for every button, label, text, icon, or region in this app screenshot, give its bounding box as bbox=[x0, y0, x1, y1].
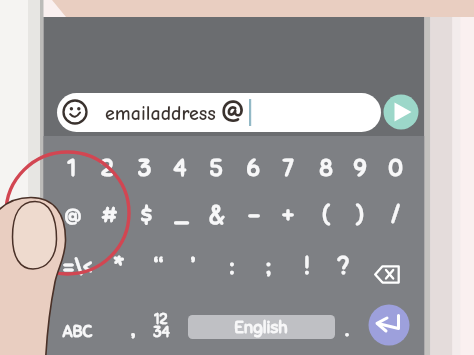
staticText: 6 bbox=[246, 153, 260, 183]
staticText: 4 bbox=[173, 153, 187, 183]
staticText: =\< bbox=[63, 254, 92, 281]
staticText: ? bbox=[337, 251, 349, 281]
button[interactable]: ? bbox=[315, 250, 371, 282]
staticText: 9 bbox=[353, 153, 367, 183]
staticText: - bbox=[248, 200, 260, 230]
button[interactable]: 12 bbox=[133, 303, 189, 335]
button[interactable]: . bbox=[319, 312, 375, 344]
staticText: $ bbox=[140, 200, 153, 230]
button[interactable]: 2 bbox=[79, 152, 135, 184]
button[interactable]: 34 bbox=[133, 316, 189, 348]
staticText: ; bbox=[266, 251, 271, 281]
button[interactable]: ) bbox=[332, 199, 388, 231]
staticText: 8 bbox=[319, 153, 333, 183]
staticText: 0 bbox=[388, 153, 403, 183]
staticText: 12 bbox=[154, 310, 168, 329]
staticText: ( bbox=[322, 200, 330, 230]
staticText: : bbox=[230, 251, 234, 281]
staticText: & bbox=[209, 200, 225, 230]
button[interactable]: 4 bbox=[152, 152, 208, 184]
button[interactable] bbox=[57, 94, 381, 132]
staticText: ) bbox=[356, 200, 364, 230]
button[interactable]: 1 bbox=[43, 152, 99, 184]
button[interactable]: + bbox=[260, 199, 316, 231]
button[interactable]: ABC bbox=[49, 315, 105, 347]
button[interactable]: 3 bbox=[116, 152, 172, 184]
staticText: 3 bbox=[137, 153, 152, 183]
staticText: English bbox=[234, 317, 288, 338]
button[interactable]: 7 bbox=[260, 152, 316, 184]
button[interactable]: ; bbox=[240, 250, 296, 282]
button[interactable]: 0 bbox=[367, 152, 423, 184]
staticText: 1 bbox=[67, 153, 76, 183]
button[interactable]: 6 bbox=[225, 152, 281, 184]
button[interactable]: # bbox=[81, 199, 137, 231]
button[interactable]: =\< bbox=[49, 251, 105, 283]
button[interactable]: 8 bbox=[298, 152, 354, 184]
button[interactable]: * bbox=[91, 250, 147, 282]
staticText: 34 bbox=[153, 323, 170, 342]
staticText: ! bbox=[304, 251, 310, 281]
staticText: @ bbox=[64, 200, 82, 230]
button[interactable]: : bbox=[204, 250, 260, 282]
staticText: 2 bbox=[100, 153, 114, 183]
staticText: ’ bbox=[191, 251, 195, 281]
button[interactable]: - bbox=[226, 199, 282, 231]
staticText: “ bbox=[154, 251, 163, 281]
button[interactable]: $ bbox=[118, 199, 174, 231]
button[interactable]: ( bbox=[298, 199, 354, 231]
staticText: _ bbox=[174, 200, 189, 230]
staticText: @ bbox=[220, 92, 246, 127]
button[interactable]: & bbox=[189, 199, 245, 231]
button[interactable]: , bbox=[105, 312, 161, 344]
button[interactable]: 9 bbox=[332, 152, 388, 184]
staticText: 5 bbox=[209, 153, 223, 183]
button[interactable]: 5 bbox=[188, 152, 244, 184]
staticText: emailaddress bbox=[105, 102, 216, 125]
button[interactable]: _ bbox=[153, 199, 209, 231]
button[interactable]: English bbox=[233, 311, 289, 343]
button[interactable]: / bbox=[367, 199, 423, 231]
staticText: . bbox=[345, 315, 349, 342]
staticText: ABC bbox=[62, 321, 93, 342]
staticText: / bbox=[390, 200, 400, 230]
button[interactable]: @ bbox=[45, 199, 101, 231]
staticText: , bbox=[131, 315, 135, 342]
button[interactable]: ’ bbox=[165, 250, 221, 282]
button[interactable]: ! bbox=[279, 250, 335, 282]
staticText: * bbox=[113, 251, 125, 281]
staticText: + bbox=[282, 200, 294, 230]
button[interactable]: “ bbox=[130, 250, 186, 282]
staticText: 7 bbox=[282, 153, 294, 183]
staticText: # bbox=[101, 200, 118, 230]
